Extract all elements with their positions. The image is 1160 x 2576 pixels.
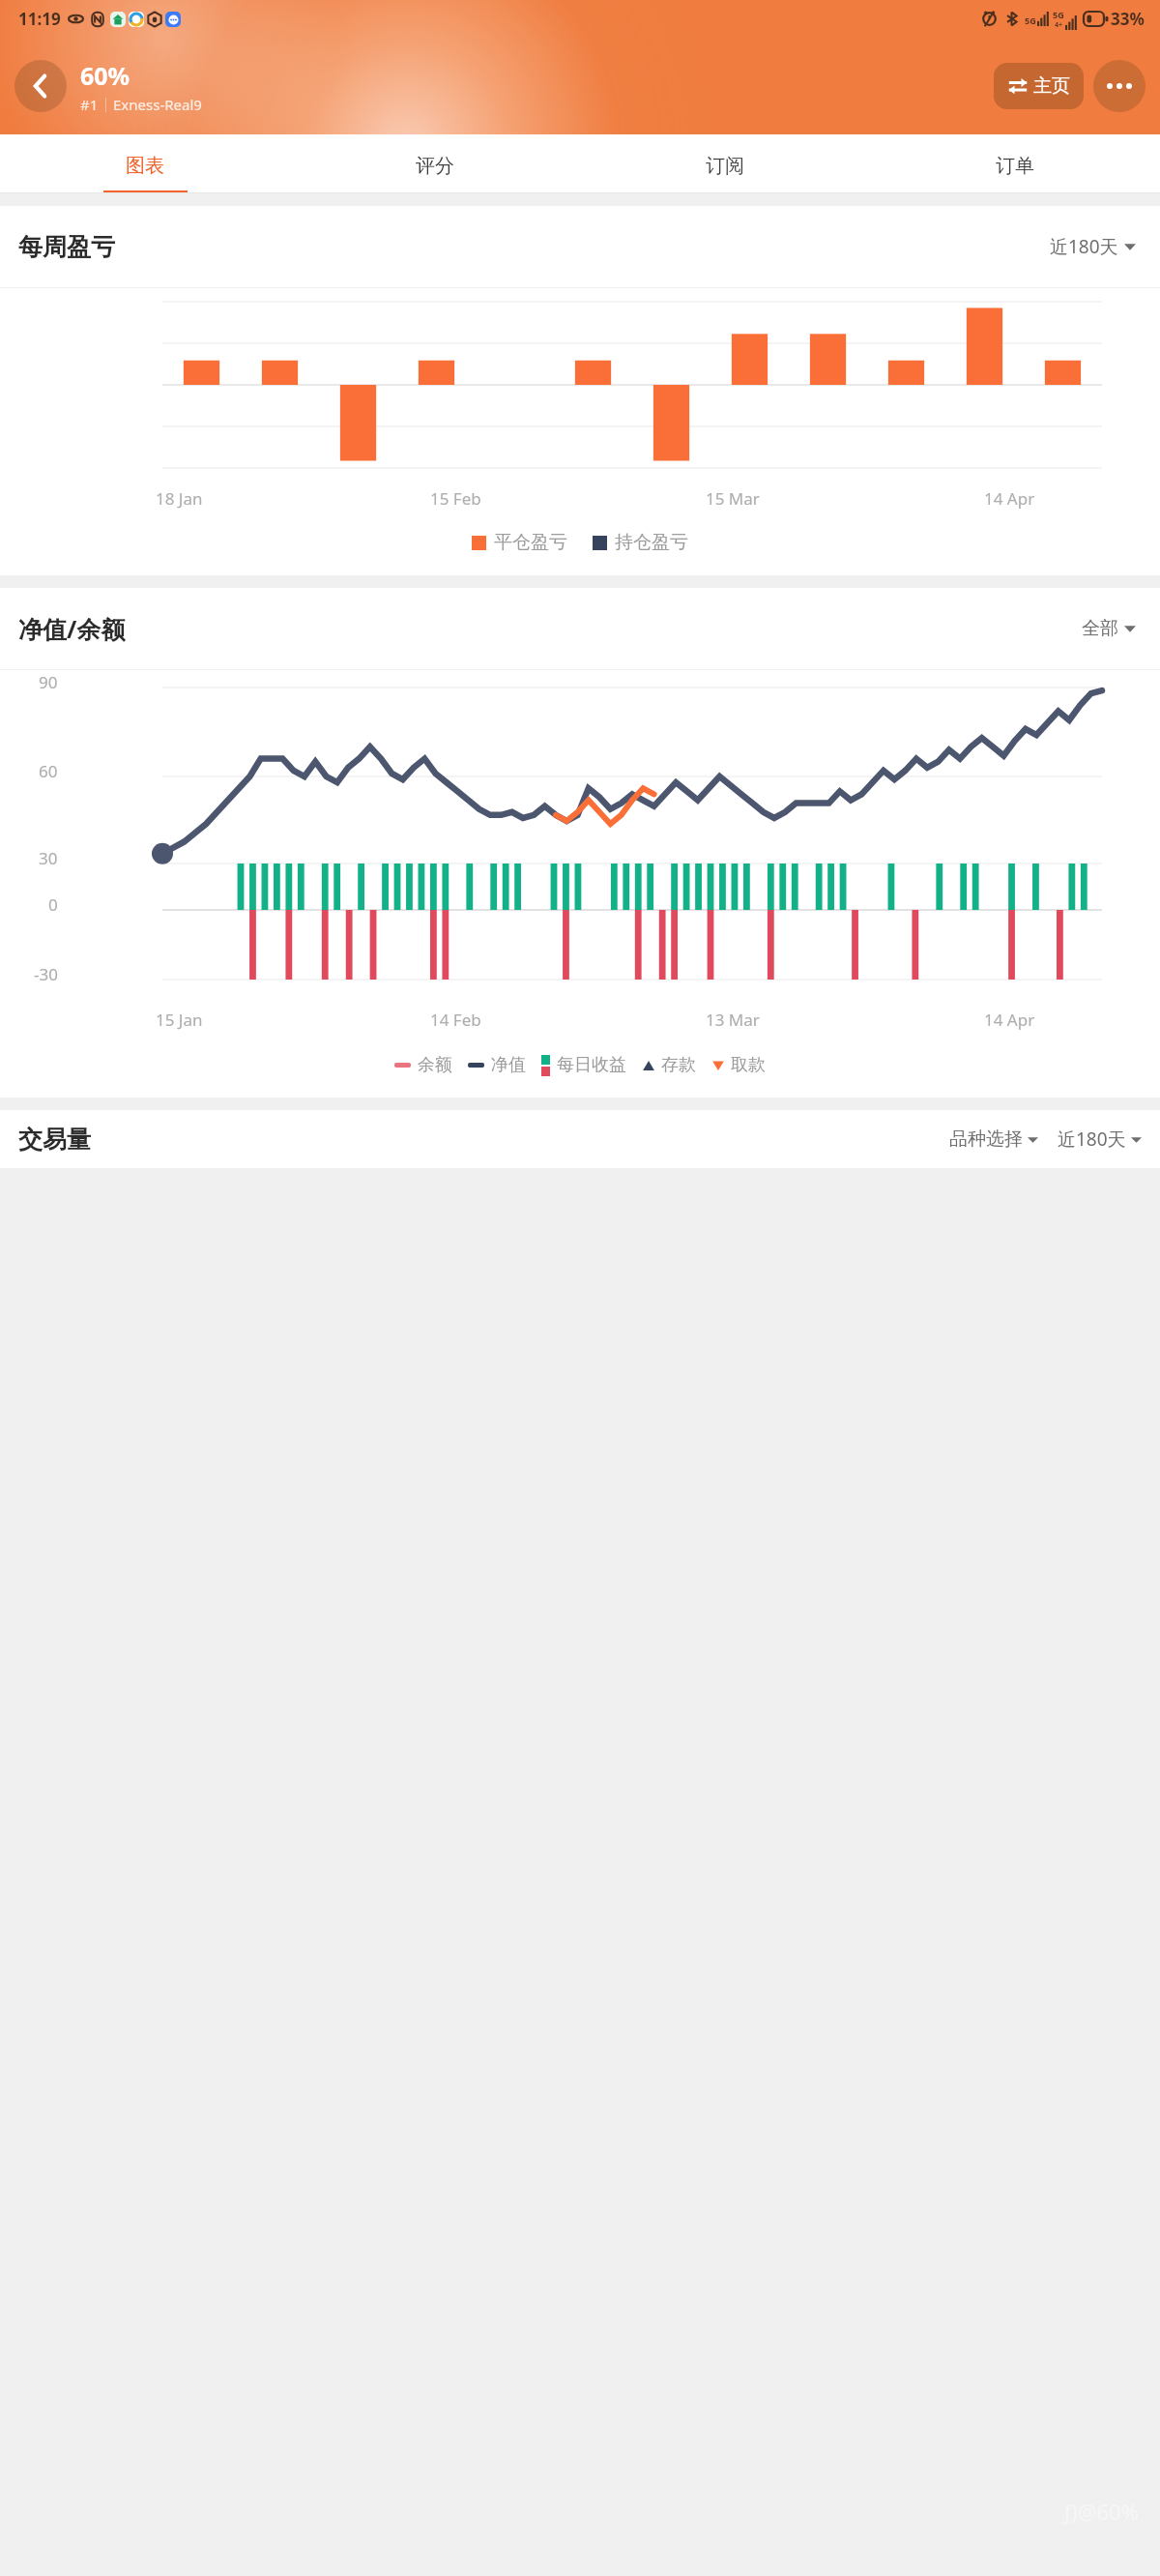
staticText: 5G — [1025, 15, 1036, 26]
staticText: 13 Mar — [706, 1009, 760, 1031]
staticText: 净值 — [491, 1054, 526, 1076]
staticText: 品种选择 — [949, 1127, 1023, 1151]
button[interactable]: 品种选择 — [949, 1127, 1038, 1151]
staticText: 交易量 — [18, 1125, 91, 1155]
staticText: 90 — [39, 671, 58, 693]
button[interactable]: 近180天 — [1058, 1127, 1142, 1152]
button[interactable]: 全部 — [1076, 611, 1142, 646]
staticText: 30 — [39, 847, 58, 869]
staticText: 0 — [48, 893, 58, 916]
staticText: 5G — [1053, 9, 1064, 20]
staticText: 18 Jan — [156, 487, 203, 510]
staticText: 14 Apr — [984, 487, 1035, 510]
staticText: 近180天 — [1058, 1127, 1126, 1152]
button[interactable]: 评分 — [290, 134, 580, 193]
staticText: 平仓盈亏 — [494, 531, 567, 554]
staticText: 60% — [80, 59, 130, 92]
button[interactable]: Back — [14, 60, 67, 112]
button[interactable]: 订单 — [870, 134, 1160, 193]
staticText: 净值/余额 — [18, 612, 126, 645]
staticText: 图表 — [126, 154, 164, 178]
staticText: 每周盈亏 — [18, 232, 115, 262]
staticText: 评分 — [416, 154, 454, 178]
button[interactable]: More options — [1093, 60, 1145, 112]
staticText: #1 — [80, 95, 99, 114]
staticText: 订单 — [996, 154, 1034, 178]
staticText: 持仓盈亏 — [615, 531, 688, 554]
staticText: 存款 — [661, 1054, 696, 1076]
staticText: 11:19 — [18, 8, 61, 30]
staticText: 4+ — [1055, 20, 1063, 30]
staticText: 60 — [39, 760, 58, 782]
button[interactable]: 主页 — [994, 63, 1084, 109]
staticText: 33% — [1111, 8, 1145, 30]
staticText: 取款 — [731, 1054, 766, 1076]
staticText: 主页 — [1033, 74, 1070, 98]
button[interactable]: 图表 — [0, 134, 290, 193]
staticText: 14 Apr — [984, 1009, 1035, 1031]
staticText: 15 Mar — [706, 487, 760, 510]
staticText: 近180天 — [1050, 234, 1118, 259]
staticText: 全部 — [1082, 617, 1118, 640]
staticText: 14 Feb — [430, 1009, 481, 1031]
staticText: -30 — [34, 963, 58, 985]
staticText: 订阅 — [706, 154, 744, 178]
button[interactable]: 近180天 — [1044, 228, 1142, 265]
staticText: 余额 — [418, 1054, 452, 1076]
staticText: 15 Feb — [430, 487, 481, 510]
staticText: 每日收益 — [557, 1054, 626, 1076]
staticText: Exness-Real9 — [113, 95, 202, 114]
staticText: 15 Jan — [156, 1009, 203, 1031]
button[interactable]: 订阅 — [580, 134, 870, 193]
